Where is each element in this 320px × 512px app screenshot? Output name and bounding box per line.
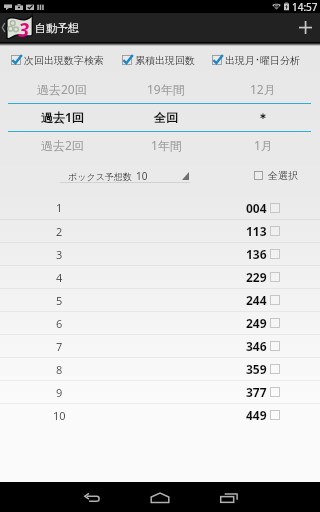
staticText: 4 xyxy=(56,270,63,285)
button[interactable]: 12月 xyxy=(208,75,318,159)
button[interactable]: Add xyxy=(290,13,320,42)
staticText: 1年間 xyxy=(151,137,182,153)
button[interactable]: 9 xyxy=(0,381,320,403)
button[interactable]: 1 xyxy=(0,196,320,219)
staticText: 全選択 xyxy=(268,169,298,182)
staticText: 過去2回 xyxy=(41,137,84,153)
button[interactable]: 3 xyxy=(0,243,320,265)
staticText: 12月 xyxy=(250,81,276,97)
staticText: 244 xyxy=(246,292,267,308)
staticText: 14:57 xyxy=(292,0,318,13)
button[interactable]: Navigate up xyxy=(0,13,6,42)
staticText: 次回出現数字検索 xyxy=(24,54,104,66)
staticText: 過去1回 xyxy=(41,109,84,125)
staticText: 過去20回 xyxy=(37,81,87,97)
button[interactable]: 累積出現回数 xyxy=(122,54,195,66)
staticText: 359 xyxy=(246,361,267,377)
button[interactable]: Home xyxy=(126,482,194,512)
button[interactable]: 2 xyxy=(0,220,320,242)
staticText: 5 xyxy=(56,293,63,308)
staticText: 449 xyxy=(246,407,267,423)
staticText: 出現月･曜日分析 xyxy=(225,54,300,66)
button[interactable]: 次回出現数字検索 xyxy=(11,54,104,66)
button[interactable]: ボックス予想数 xyxy=(60,169,190,183)
button[interactable]: 7 xyxy=(0,335,320,357)
staticText: 9 xyxy=(56,385,63,400)
staticText: 8 xyxy=(56,362,63,377)
staticText: 3 xyxy=(56,247,63,262)
staticText: 136 xyxy=(246,246,267,262)
button[interactable]: Recent apps xyxy=(195,482,263,512)
staticText: 1 xyxy=(56,200,63,215)
staticText: ボックス予想数 xyxy=(68,171,132,182)
button[interactable]: 8 xyxy=(0,358,320,380)
staticText: 3 xyxy=(18,16,30,39)
button[interactable]: 6 xyxy=(0,312,320,334)
staticText: 10 xyxy=(53,408,66,423)
staticText: 1月 xyxy=(254,137,273,153)
staticText: 229 xyxy=(246,269,267,285)
staticText: 10 xyxy=(136,169,148,183)
staticText: 6 xyxy=(56,316,63,331)
staticText: 19年間 xyxy=(147,81,185,97)
button[interactable]: 出現月･曜日分析 xyxy=(212,54,300,66)
staticText: 累積出現回数 xyxy=(135,54,195,66)
staticText: 7 xyxy=(56,339,63,354)
button[interactable]: 4 xyxy=(0,266,320,288)
staticText: 377 xyxy=(246,384,267,400)
staticText: ＊ xyxy=(257,110,269,125)
staticText: 113 xyxy=(246,223,267,239)
button[interactable]: 19年間 xyxy=(124,75,208,159)
button[interactable]: 全選択 xyxy=(254,169,298,182)
staticText: 自動予想 xyxy=(35,21,79,35)
staticText: 2 xyxy=(56,224,63,239)
button[interactable]: 5 xyxy=(0,289,320,311)
staticText: 249 xyxy=(246,315,267,331)
staticText: 全回 xyxy=(154,110,178,125)
button[interactable]: 過去20回 xyxy=(0,75,124,159)
staticText: 004 xyxy=(246,200,267,216)
button[interactable]: 10 xyxy=(0,404,320,426)
staticText: 346 xyxy=(246,338,267,354)
button[interactable]: Back xyxy=(58,482,126,512)
